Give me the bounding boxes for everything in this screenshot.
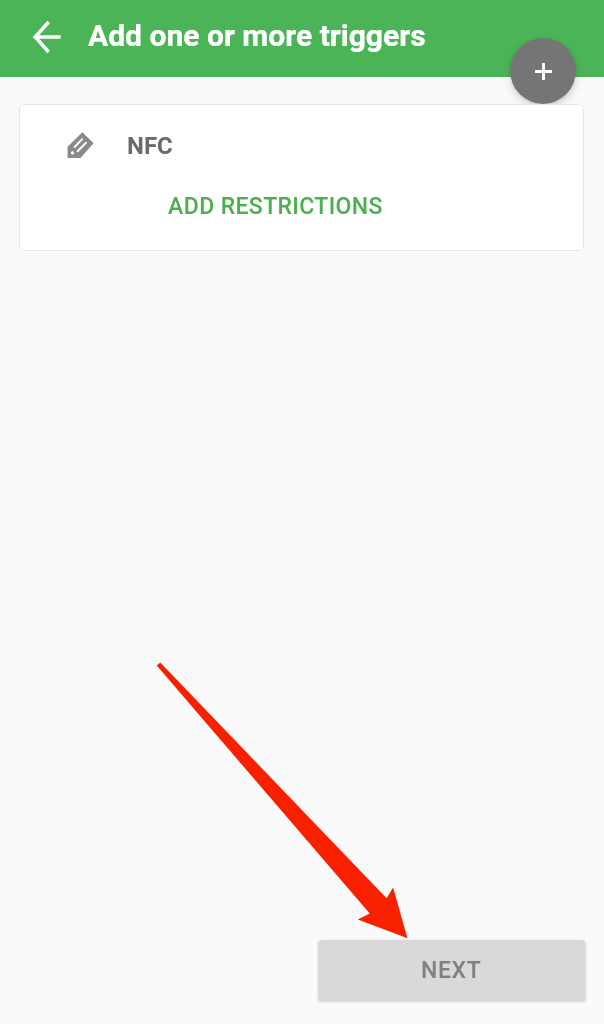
button[interactable]: Navigate up <box>19 9 75 65</box>
staticText: NEXT <box>421 957 482 984</box>
staticText: NFC <box>127 132 173 160</box>
button[interactable]: NFC <box>19 104 584 187</box>
button[interactable]: NEXT <box>318 940 585 1001</box>
staticText: Add one or more triggers <box>88 18 426 53</box>
button[interactable]: Add trigger <box>510 38 576 104</box>
button[interactable]: ADD RESTRICTIONS <box>141 174 409 238</box>
staticText: ADD RESTRICTIONS <box>168 193 383 220</box>
